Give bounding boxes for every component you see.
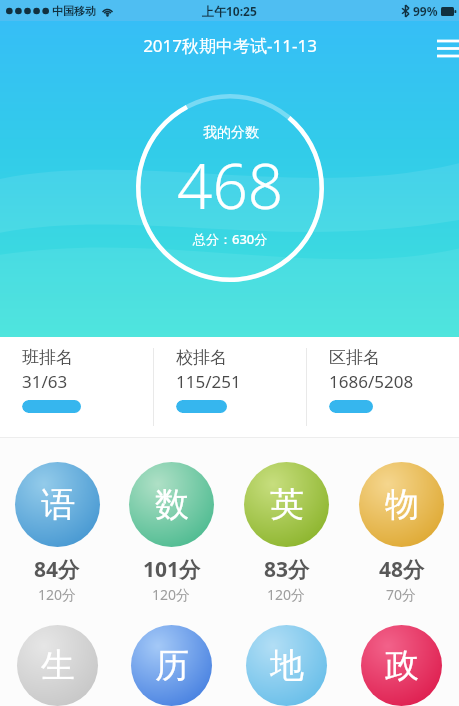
button[interactable]: 班排名 [0,337,153,437]
button[interactable]: 历 [114,625,229,706]
staticText: 历 [155,644,189,687]
button[interactable]: 政 [344,625,459,706]
staticText: 99% [413,3,438,19]
staticText: 101分 [143,555,201,584]
staticText: 70分 [386,585,417,604]
staticText: 2017秋期中考试-11-13 [143,34,317,57]
staticText: 83分 [264,555,310,584]
staticText: 1686/5208 [329,370,414,393]
staticText: 区排名 [329,347,380,368]
button[interactable]: 生 [0,625,114,706]
staticText: 生 [41,644,75,687]
staticText: 上午10:25 [202,3,257,19]
button[interactable]: 物 [344,462,459,604]
staticText: 班排名 [22,347,73,368]
staticText: 115/251 [176,370,241,393]
button[interactable]: Menu [419,29,459,67]
staticText: 校排名 [176,347,227,368]
staticText: 48分 [379,555,425,584]
staticText: 31/63 [22,370,68,393]
staticText: 84分 [34,555,80,584]
button[interactable]: 数 [114,462,229,604]
staticText: 总分：630分 [193,230,268,248]
staticText: 英 [270,483,304,526]
staticText: 我的分数 [203,124,259,142]
staticText: 地 [270,644,304,687]
button[interactable]: 地 [229,625,344,706]
button[interactable]: 校排名 [154,337,306,437]
staticText: 120分 [267,585,306,604]
button[interactable]: 区排名 [307,337,459,437]
staticText: 468 [177,143,284,227]
button[interactable]: 语 [0,462,114,604]
staticText: 数 [155,483,189,526]
staticText: 中国移动 [52,4,96,18]
staticText: 语 [41,483,75,526]
button[interactable]: 英 [229,462,344,604]
staticText: 政 [385,644,419,687]
staticText: 物 [385,483,419,526]
staticText: 120分 [38,585,77,604]
staticText: 120分 [152,585,191,604]
